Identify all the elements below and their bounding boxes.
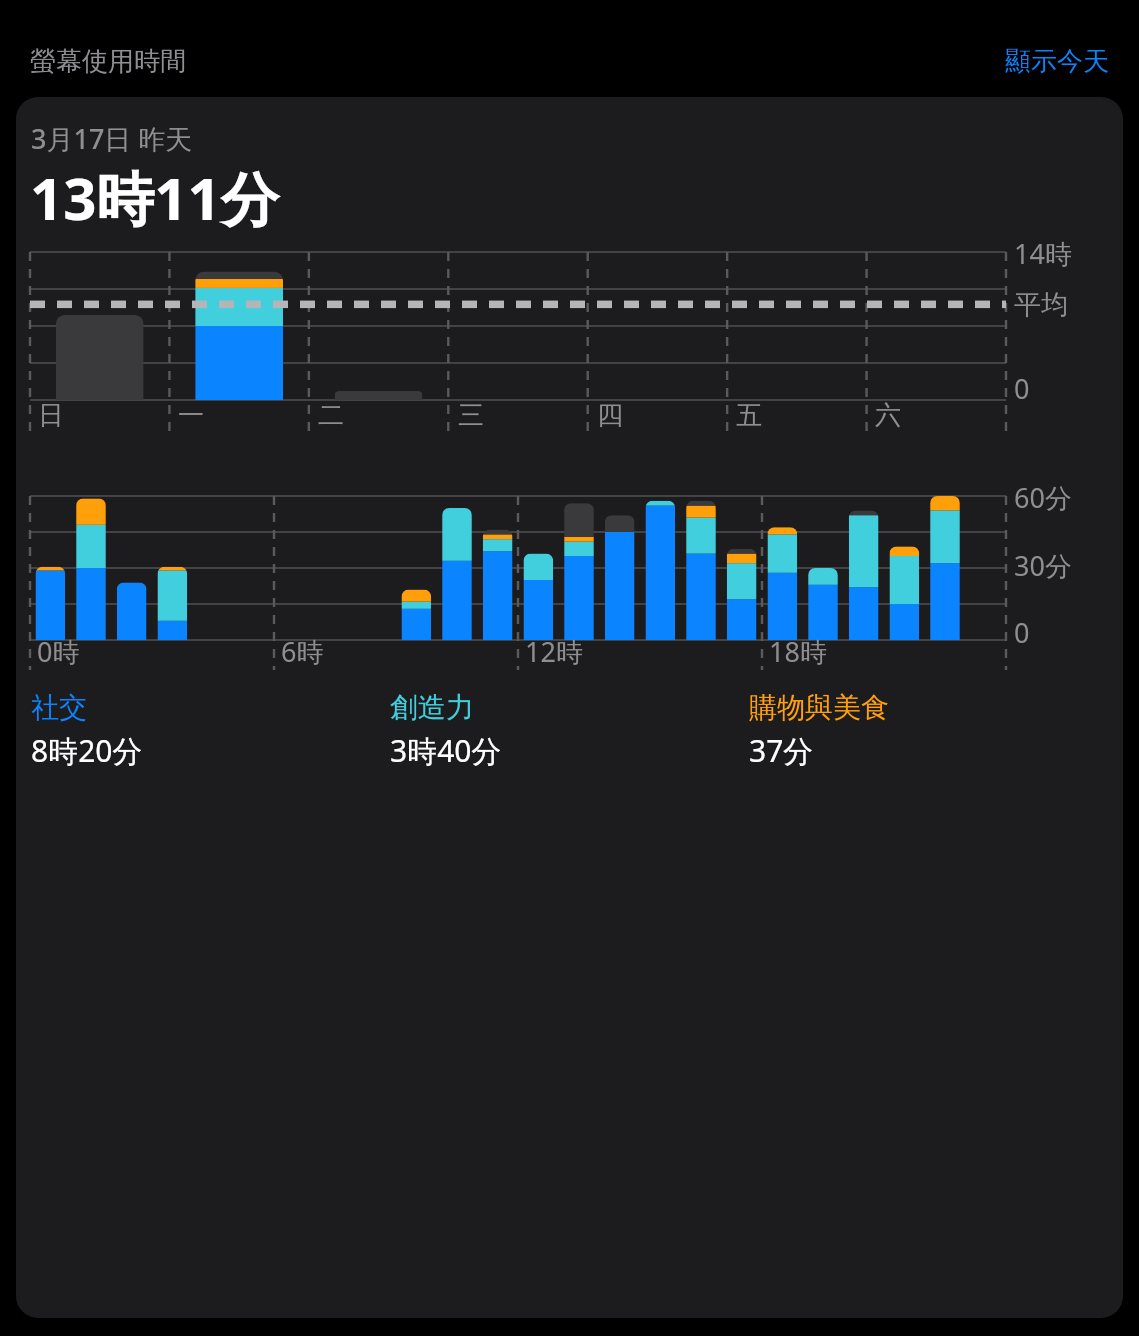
staticText: 二 [318,399,344,432]
staticText: 日 [38,399,64,432]
staticText: 螢幕使用時間 [30,45,186,78]
button[interactable]: 購物與美食 [749,690,1108,771]
staticText: 30分 [1014,547,1072,584]
button[interactable]: 3月17日 昨天 [16,97,1123,1318]
staticText: 一 [178,399,204,432]
staticText: 13時11分 [30,158,279,237]
button[interactable]: 社交 [31,690,390,771]
staticText: 平均 [1014,288,1068,322]
staticText: 創造力 [390,690,474,725]
staticText: 四 [597,399,623,432]
staticText: 60分 [1014,479,1072,516]
staticText: 18時 [769,633,827,670]
staticText: 五 [736,399,762,432]
staticText: 0時 [37,633,80,670]
staticText: 社交 [31,690,87,725]
staticText: 三 [458,399,484,432]
button[interactable]: 顯示今天 [1005,45,1109,78]
staticText: 6時 [281,633,324,670]
staticText: 8時20分 [31,730,143,771]
staticText: 37分 [749,730,814,771]
staticText: 0 [1014,370,1030,407]
button[interactable]: 創造力 [390,690,749,771]
staticText: 購物與美食 [749,690,889,725]
staticText: 14時 [1014,235,1072,272]
staticText: 3時40分 [390,730,502,771]
staticText: 顯示今天 [1005,45,1109,78]
staticText: 0 [1014,614,1030,651]
staticText: 12時 [525,633,583,670]
staticText: 六 [875,399,901,432]
staticText: 3月17日 昨天 [31,120,193,157]
